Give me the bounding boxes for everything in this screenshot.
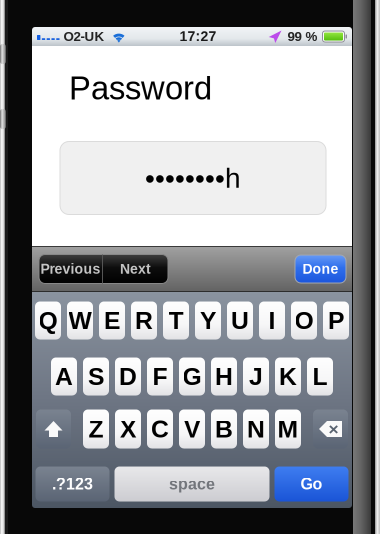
staticText: W bbox=[68, 307, 91, 334]
staticText: G bbox=[182, 363, 201, 390]
button[interactable]: Next bbox=[103, 254, 168, 283]
staticText: J bbox=[249, 363, 263, 390]
staticText: P bbox=[328, 307, 344, 334]
button[interactable]: Shift bbox=[36, 409, 71, 448]
staticText: H bbox=[215, 363, 233, 390]
staticText: 17:27 bbox=[179, 29, 216, 44]
button[interactable]: E bbox=[99, 301, 125, 339]
staticText: 99 % bbox=[287, 29, 317, 44]
button[interactable]: G bbox=[179, 357, 205, 395]
button[interactable]: Done bbox=[295, 255, 346, 283]
staticText: Password bbox=[69, 70, 212, 106]
button[interactable]: U bbox=[227, 301, 253, 339]
button[interactable]: Delete bbox=[313, 409, 348, 448]
staticText: D bbox=[119, 363, 137, 390]
button[interactable]: Q bbox=[35, 301, 61, 339]
staticText: Z bbox=[88, 415, 103, 443]
staticText: O bbox=[294, 307, 313, 334]
button[interactable]: I bbox=[259, 301, 285, 339]
button[interactable]: A bbox=[51, 357, 77, 395]
staticText: B bbox=[215, 415, 233, 443]
button[interactable]: W bbox=[67, 301, 93, 339]
button[interactable]: C bbox=[147, 409, 173, 448]
staticText: A bbox=[55, 363, 73, 390]
staticText: ••••••••h bbox=[145, 162, 241, 194]
button[interactable]: P bbox=[323, 301, 349, 339]
staticText: Q bbox=[38, 307, 57, 334]
staticText: Go bbox=[300, 475, 322, 493]
button[interactable]: V bbox=[179, 409, 205, 448]
staticText: C bbox=[151, 415, 169, 443]
button[interactable]: M bbox=[275, 409, 301, 448]
button[interactable]: space bbox=[114, 466, 269, 501]
staticText: K bbox=[279, 363, 297, 390]
staticText: × bbox=[328, 419, 338, 439]
button[interactable]: K bbox=[275, 357, 301, 395]
button[interactable]: S bbox=[83, 357, 109, 395]
staticText: X bbox=[120, 415, 136, 443]
staticText: O2-UK bbox=[64, 29, 105, 44]
button[interactable]: X bbox=[115, 409, 141, 448]
button[interactable]: O bbox=[291, 301, 317, 339]
staticText: V bbox=[184, 415, 200, 443]
button[interactable]: R bbox=[131, 301, 157, 339]
staticText: F bbox=[152, 363, 167, 390]
button[interactable]: N bbox=[243, 409, 269, 448]
button[interactable]: F bbox=[147, 357, 173, 395]
button[interactable]: Previous bbox=[39, 254, 102, 283]
staticText: Done bbox=[302, 261, 338, 277]
staticText: T bbox=[168, 307, 183, 334]
staticText: space bbox=[169, 475, 215, 493]
staticText: U bbox=[231, 307, 249, 334]
button[interactable]: D bbox=[115, 357, 141, 395]
button[interactable]: J bbox=[243, 357, 269, 395]
button[interactable]: T bbox=[163, 301, 189, 339]
button[interactable]: B bbox=[211, 409, 237, 448]
button[interactable]: Y bbox=[195, 301, 221, 339]
staticText: N bbox=[247, 415, 265, 443]
button[interactable]: Go bbox=[274, 466, 348, 501]
button[interactable]: L bbox=[307, 357, 333, 395]
staticText: L bbox=[312, 363, 327, 390]
button[interactable]: H bbox=[211, 357, 237, 395]
staticText: R bbox=[135, 307, 153, 334]
staticText: Previous bbox=[40, 261, 100, 277]
staticText: Y bbox=[200, 307, 216, 334]
button[interactable]: Z bbox=[83, 409, 109, 448]
staticText: I bbox=[268, 307, 275, 334]
staticText: Next bbox=[120, 261, 151, 277]
button[interactable]: Numbers and symbols bbox=[35, 466, 109, 501]
staticText: M bbox=[277, 415, 298, 443]
staticText: .?123 bbox=[52, 475, 93, 493]
staticText: S bbox=[88, 363, 104, 390]
staticText: E bbox=[104, 307, 120, 334]
